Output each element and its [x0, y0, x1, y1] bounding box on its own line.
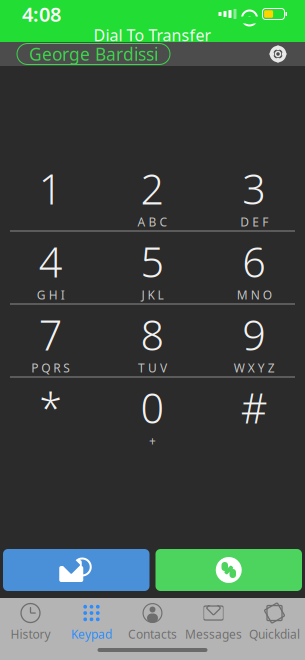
staticText: P Q R S	[31, 360, 70, 376]
staticText: Messages	[185, 626, 242, 642]
staticText: J K L	[141, 287, 163, 303]
staticText: +	[149, 433, 156, 449]
staticText: George Bardissi	[29, 42, 158, 65]
staticText: G H I	[37, 287, 65, 303]
staticText: Dial To Transfer	[93, 24, 211, 46]
staticText: A B C	[137, 214, 167, 230]
staticText: 3	[242, 161, 266, 216]
button[interactable]: 2	[102, 158, 203, 230]
button[interactable]: Call	[155, 549, 302, 591]
staticText: *	[39, 380, 62, 435]
button[interactable]: 7	[0, 304, 102, 376]
staticText: D E F	[240, 214, 268, 230]
button[interactable]: 9	[203, 304, 305, 376]
button[interactable]: Quickdial	[244, 603, 305, 641]
button[interactable]: History	[0, 603, 61, 641]
staticText: Contacts	[128, 626, 177, 642]
button[interactable]: 3	[203, 158, 305, 230]
staticText: T U V	[138, 360, 167, 376]
button[interactable]: *	[0, 377, 102, 449]
staticText: 6	[242, 234, 266, 289]
staticText: 0	[140, 380, 164, 435]
button[interactable]: George Bardissi	[17, 43, 170, 64]
staticText: History	[10, 626, 50, 642]
button[interactable]: Voicemail	[3, 549, 149, 591]
button[interactable]: Settings	[263, 39, 293, 69]
button[interactable]: 6	[203, 231, 305, 303]
staticText: 1	[39, 161, 63, 216]
staticText: 9	[242, 307, 266, 362]
staticText: Keypad	[71, 626, 112, 642]
button[interactable]: 4	[0, 231, 102, 303]
staticText: 4	[39, 234, 63, 289]
button[interactable]: 8	[102, 304, 203, 376]
staticText: W X Y Z	[234, 360, 275, 376]
staticText: 2	[140, 161, 164, 216]
staticText: 4:08	[22, 1, 61, 27]
staticText: M N O	[237, 287, 272, 303]
staticText: 7	[39, 307, 63, 362]
button[interactable]: #	[203, 377, 305, 449]
staticText: 5	[140, 234, 164, 289]
staticText: 8	[140, 307, 164, 362]
button[interactable]: Keypad	[61, 603, 122, 641]
staticText: Quickdial	[249, 626, 300, 642]
button[interactable]: 1	[0, 158, 102, 230]
button[interactable]: 0	[102, 377, 203, 449]
staticText: #	[241, 380, 268, 435]
button[interactable]: Messages	[183, 603, 244, 641]
button[interactable]: 5	[102, 231, 203, 303]
button[interactable]: Contacts	[122, 603, 183, 641]
